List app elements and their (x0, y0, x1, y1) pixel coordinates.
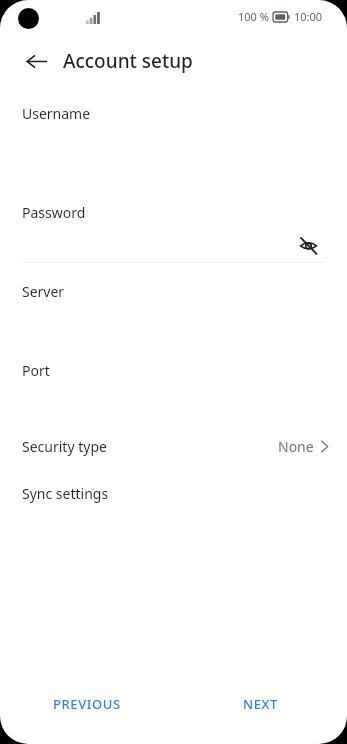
button[interactable]: Server (0, 281, 347, 301)
button[interactable]: Port (0, 360, 347, 380)
staticText: Server (22, 282, 65, 301)
staticText: Account setup (63, 48, 193, 74)
staticText: NEXT (243, 695, 278, 713)
staticText: Security type (22, 437, 107, 456)
button[interactable]: Sync settings (0, 476, 347, 510)
staticText: Sync settings (22, 484, 109, 503)
staticText: Username (22, 104, 91, 123)
staticText: PREVIOUS (53, 695, 121, 713)
staticText: Password (22, 203, 86, 222)
staticText: Port (22, 361, 50, 380)
button[interactable]: NEXT (173, 688, 347, 720)
staticText: 100 % (238, 9, 269, 24)
button[interactable]: PREVIOUS (0, 688, 173, 720)
button[interactable]: Username (0, 103, 347, 123)
button[interactable]: Back (14, 40, 58, 82)
button[interactable]: Security type (0, 428, 347, 464)
button[interactable]: Show password (291, 228, 325, 262)
staticText: 10:00 (294, 9, 323, 24)
staticText: None (278, 437, 314, 456)
button[interactable]: Password (0, 202, 347, 222)
